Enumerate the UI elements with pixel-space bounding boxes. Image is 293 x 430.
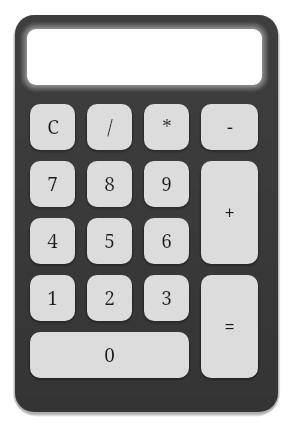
- button[interactable]: Divide: [87, 104, 132, 150]
- button[interactable]: 8: [87, 161, 132, 207]
- button[interactable]: 7: [30, 161, 75, 207]
- button[interactable]: Display: [27, 29, 262, 85]
- staticText: -: [227, 114, 233, 140]
- button[interactable]: 0: [30, 332, 189, 378]
- button[interactable]: Subtract: [201, 104, 258, 150]
- button[interactable]: Multiply: [144, 104, 189, 150]
- staticText: *: [162, 114, 172, 140]
- staticText: 1: [47, 285, 58, 311]
- button[interactable]: 3: [144, 275, 189, 321]
- button[interactable]: 6: [144, 218, 189, 264]
- button[interactable]: 5: [87, 218, 132, 264]
- button[interactable]: 1: [30, 275, 75, 321]
- button[interactable]: Equals: [201, 275, 258, 378]
- staticText: 7: [47, 171, 58, 197]
- staticText: 2: [104, 285, 115, 311]
- staticText: 0: [104, 342, 115, 368]
- staticText: =: [224, 314, 235, 340]
- staticText: 4: [47, 228, 58, 254]
- button[interactable]: 2: [87, 275, 132, 321]
- button[interactable]: 9: [144, 161, 189, 207]
- staticText: /: [107, 114, 113, 140]
- button[interactable]: Add: [201, 161, 258, 264]
- staticText: 5: [104, 228, 115, 254]
- staticText: 8: [104, 171, 115, 197]
- button[interactable]: Clear: [30, 104, 75, 150]
- staticText: +: [224, 200, 235, 226]
- button[interactable]: 4: [30, 218, 75, 264]
- staticText: C: [47, 114, 59, 140]
- staticText: 3: [161, 285, 172, 311]
- staticText: 9: [161, 171, 172, 197]
- staticText: 6: [161, 228, 172, 254]
